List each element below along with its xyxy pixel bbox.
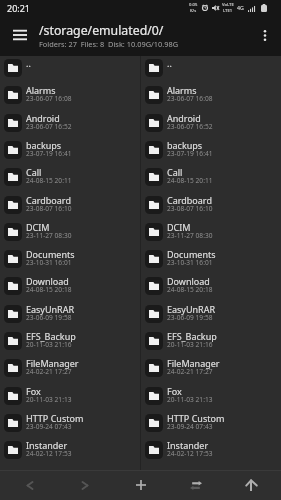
- staticText: 24-08-15 20:11: [167, 176, 213, 185]
- staticText: ..: [26, 57, 31, 69]
- button[interactable]: Android: [0, 111, 140, 138]
- staticText: 4G: [237, 4, 244, 11]
- staticText: 23-10-31 16:01: [167, 258, 213, 267]
- staticText: Download: [26, 275, 69, 287]
- staticText: HTTP Custom: [167, 412, 225, 424]
- staticText: 23-06-07 16:08: [26, 94, 72, 103]
- staticText: Cardboard: [26, 194, 71, 206]
- staticText: DCIM: [26, 221, 50, 233]
- button[interactable]: Call: [141, 165, 281, 192]
- button[interactable]: Transfer: [171, 470, 221, 500]
- staticText: 24-08-15 20:11: [26, 176, 72, 185]
- button[interactable]: EasyUnRAR: [0, 302, 140, 329]
- button[interactable]: ..: [0, 56, 140, 83]
- staticText: Cardboard: [167, 194, 212, 206]
- button[interactable]: Download: [141, 274, 281, 301]
- staticText: backups: [26, 139, 62, 151]
- staticText: 23-06-09 19:58: [167, 313, 213, 322]
- staticText: Alarms: [167, 84, 197, 96]
- staticText: Fox: [26, 385, 41, 397]
- staticText: 23-06-07 16:52: [167, 122, 213, 131]
- staticText: 20-11-03 21:16: [26, 340, 72, 349]
- staticText: 24-08-15 20:18: [26, 285, 72, 294]
- button[interactable]: EasyUnRAR: [141, 302, 281, 329]
- staticText: Android: [167, 112, 201, 124]
- button[interactable]: More options: [249, 16, 281, 56]
- staticText: 24-08-15 20:18: [167, 285, 213, 294]
- button[interactable]: FileManager: [0, 356, 140, 383]
- staticText: FileManager: [26, 357, 79, 369]
- staticText: 0.05: [189, 2, 198, 8]
- button[interactable]: backups: [0, 138, 140, 165]
- staticText: 20:21: [7, 2, 31, 14]
- staticText: 23-08-07 16:10: [167, 204, 213, 213]
- staticText: Download: [167, 275, 210, 287]
- staticText: 24-02-12 17:53: [26, 449, 72, 458]
- button[interactable]: HTTP Custom: [0, 411, 140, 438]
- button[interactable]: ..: [141, 56, 281, 83]
- button[interactable]: Fox: [0, 384, 140, 411]
- staticText: K/s: [190, 8, 197, 14]
- staticText: Instander: [26, 439, 68, 451]
- staticText: Folders: 27 Files: 8 Disk: 10.09G/10.98G: [39, 39, 179, 49]
- staticText: 20-11-03 21:13: [26, 395, 72, 404]
- button[interactable]: Back: [5, 470, 55, 500]
- button[interactable]: Documents: [141, 247, 281, 274]
- staticText: VoLTE: [222, 2, 234, 8]
- staticText: Alarms: [26, 84, 56, 96]
- button[interactable]: Alarms: [0, 83, 140, 110]
- button[interactable]: Documents: [0, 247, 140, 274]
- staticText: EFS_Backup: [26, 330, 76, 342]
- staticText: 24-02-12 17:53: [167, 449, 213, 458]
- staticText: 24-02-21 17:27: [167, 367, 213, 376]
- button[interactable]: Download: [0, 274, 140, 301]
- button[interactable]: Instander: [0, 438, 140, 465]
- staticText: 23-11-27 08:30: [167, 231, 213, 240]
- staticText: /storage/emulated/0/: [39, 22, 164, 39]
- staticText: 23-06-07 16:08: [167, 94, 213, 103]
- button[interactable]: Call: [0, 165, 140, 192]
- button[interactable]: Menu: [0, 16, 39, 56]
- button[interactable]: HTTP Custom: [141, 411, 281, 438]
- staticText: EasyUnRAR: [167, 303, 216, 315]
- staticText: 23-09-24 07:43: [167, 422, 213, 431]
- staticText: backups: [167, 139, 203, 151]
- staticText: LTE1: [223, 8, 233, 14]
- staticText: Documents: [167, 248, 216, 260]
- staticText: Instander: [167, 439, 209, 451]
- button[interactable]: DCIM: [141, 220, 281, 247]
- staticText: Fox: [167, 385, 182, 397]
- staticText: 24-02-21 17:27: [26, 367, 72, 376]
- staticText: Call: [26, 166, 42, 178]
- button[interactable]: Alarms: [141, 83, 281, 110]
- staticText: 20-11-03 21:16: [167, 340, 213, 349]
- button[interactable]: Android: [141, 111, 281, 138]
- staticText: 23-10-31 16:01: [26, 258, 72, 267]
- button[interactable]: Add: [116, 470, 166, 500]
- button[interactable]: Instander: [141, 438, 281, 465]
- button[interactable]: backups: [141, 138, 281, 165]
- button[interactable]: EFS_Backup: [141, 329, 281, 356]
- staticText: 23-11-27 08:30: [26, 231, 72, 240]
- staticText: HTTP Custom: [26, 412, 84, 424]
- staticText: Call: [167, 166, 183, 178]
- button[interactable]: Cardboard: [141, 193, 281, 220]
- staticText: EFS_Backup: [167, 330, 217, 342]
- button[interactable]: Forward: [60, 470, 110, 500]
- staticText: EasyUnRAR: [26, 303, 75, 315]
- staticText: Documents: [26, 248, 75, 260]
- staticText: 23-08-07 16:10: [26, 204, 72, 213]
- staticText: 23-07-19 16:41: [167, 149, 213, 158]
- button[interactable]: DCIM: [0, 220, 140, 247]
- button[interactable]: FileManager: [141, 356, 281, 383]
- staticText: DCIM: [167, 221, 191, 233]
- staticText: 23-06-07 16:52: [26, 122, 72, 131]
- staticText: 23-07-19 16:41: [26, 149, 72, 158]
- staticText: 23-06-09 19:58: [26, 313, 72, 322]
- button[interactable]: Fox: [141, 384, 281, 411]
- staticText: FileManager: [167, 357, 220, 369]
- staticText: ..: [167, 57, 172, 69]
- button[interactable]: Cardboard: [0, 193, 140, 220]
- button[interactable]: Up: [226, 470, 276, 500]
- button[interactable]: EFS_Backup: [0, 329, 140, 356]
